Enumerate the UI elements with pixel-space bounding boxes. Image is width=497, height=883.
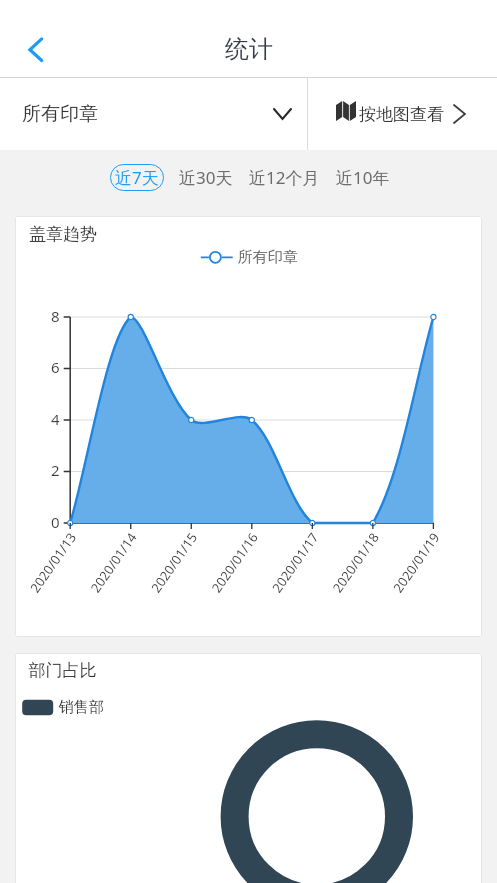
staticText: 近30天 — [179, 166, 233, 189]
button[interactable]: 近7天 — [110, 164, 164, 191]
button[interactable]: 近12个月 — [241, 164, 328, 191]
button[interactable]: Back — [8, 27, 52, 71]
button[interactable]: 所有印章 — [0, 78, 307, 150]
staticText: 按地图查看 — [359, 104, 444, 125]
staticText: 所有印章 — [22, 102, 98, 126]
button[interactable]: 近30天 — [171, 164, 241, 191]
staticText: 统计 — [225, 34, 273, 64]
staticText: 近7天 — [115, 166, 159, 189]
button[interactable]: 按地图查看 — [308, 78, 497, 150]
button[interactable]: 近10年 — [328, 164, 398, 191]
staticText: 近12个月 — [249, 166, 320, 189]
staticText: 近10年 — [336, 166, 390, 189]
